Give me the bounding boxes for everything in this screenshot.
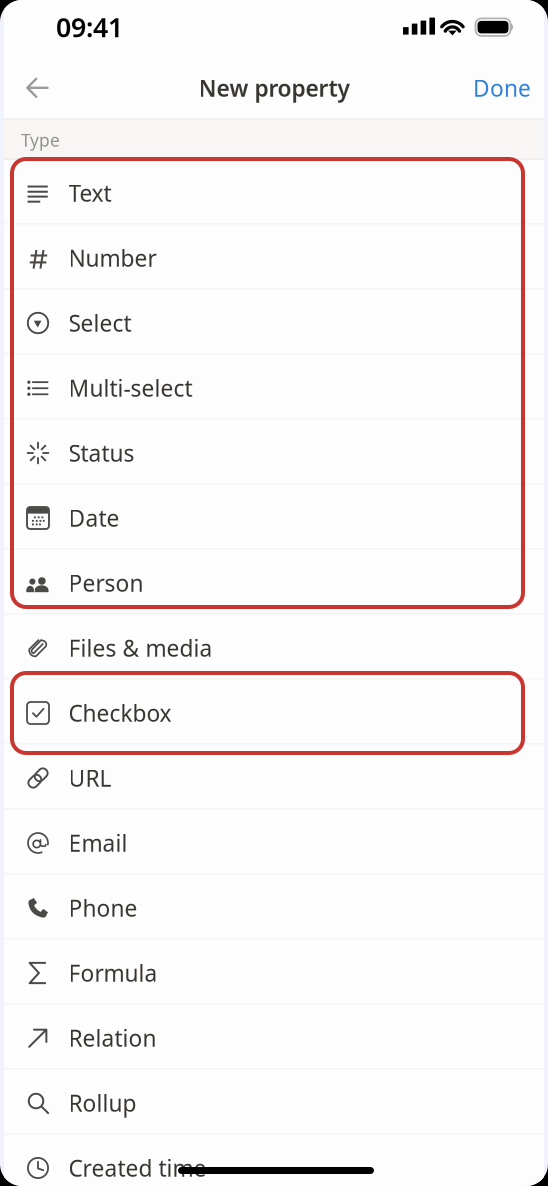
button[interactable]: Formula xyxy=(4,939,544,1004)
staticText: Rollup xyxy=(68,1088,136,1118)
button[interactable]: Person xyxy=(4,549,544,614)
button[interactable]: Relation xyxy=(4,1004,544,1069)
staticText: New property xyxy=(198,73,349,103)
staticText: URL xyxy=(68,763,111,793)
staticText: 09:41 xyxy=(56,9,123,45)
staticText: Done xyxy=(473,73,531,103)
button[interactable]: Text xyxy=(4,159,544,224)
button[interactable]: Date xyxy=(4,484,544,549)
staticText: Email xyxy=(68,828,127,858)
staticText: Person xyxy=(68,568,143,598)
button[interactable]: Checkbox xyxy=(4,679,544,744)
staticText: Created time xyxy=(68,1153,206,1183)
button[interactable]: URL xyxy=(4,744,544,809)
staticText: Formula xyxy=(68,958,157,988)
staticText: Select xyxy=(68,308,131,338)
button[interactable]: Back xyxy=(0,0,548,1186)
staticText: Number xyxy=(68,243,156,273)
button[interactable]: Created time xyxy=(4,1134,544,1186)
button[interactable]: Rollup xyxy=(4,1069,544,1134)
button[interactable]: Done xyxy=(460,64,544,112)
button[interactable]: Status xyxy=(4,419,544,484)
staticText: Text xyxy=(68,178,111,208)
staticText: Multi-select xyxy=(68,373,192,403)
staticText: Relation xyxy=(68,1023,156,1053)
button[interactable]: Number xyxy=(4,224,544,289)
staticText: Type xyxy=(21,128,60,151)
staticText: Checkbox xyxy=(68,698,171,728)
staticText: Status xyxy=(68,438,134,468)
button[interactable]: Files & media xyxy=(4,614,544,679)
button[interactable]: Multi-select xyxy=(4,354,544,419)
button[interactable]: Select xyxy=(4,289,544,354)
button[interactable]: Email xyxy=(4,809,544,874)
staticText: Phone xyxy=(68,893,137,923)
button[interactable]: Phone xyxy=(4,874,544,939)
staticText: Date xyxy=(68,503,119,533)
staticText: Files & media xyxy=(68,633,212,663)
